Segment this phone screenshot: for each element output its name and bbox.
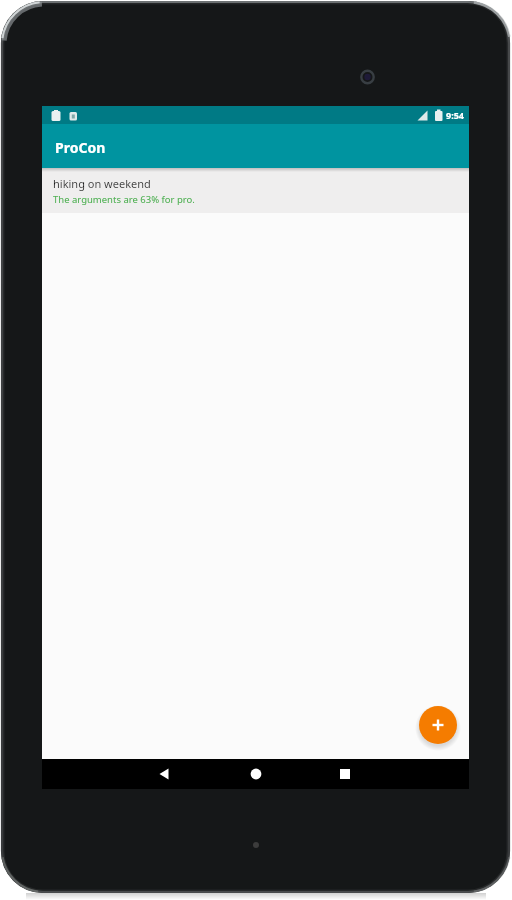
staticText: hiking on weekend [53,176,151,191]
button[interactable] [144,759,184,789]
staticText: The arguments are 63% for pro. [53,193,195,206]
staticText: ProCon [55,138,106,157]
staticText: 9:54 [446,109,464,121]
button[interactable]: hiking on weekend [42,168,469,213]
button[interactable] [325,759,365,789]
button[interactable] [236,759,276,789]
button[interactable] [419,706,457,744]
